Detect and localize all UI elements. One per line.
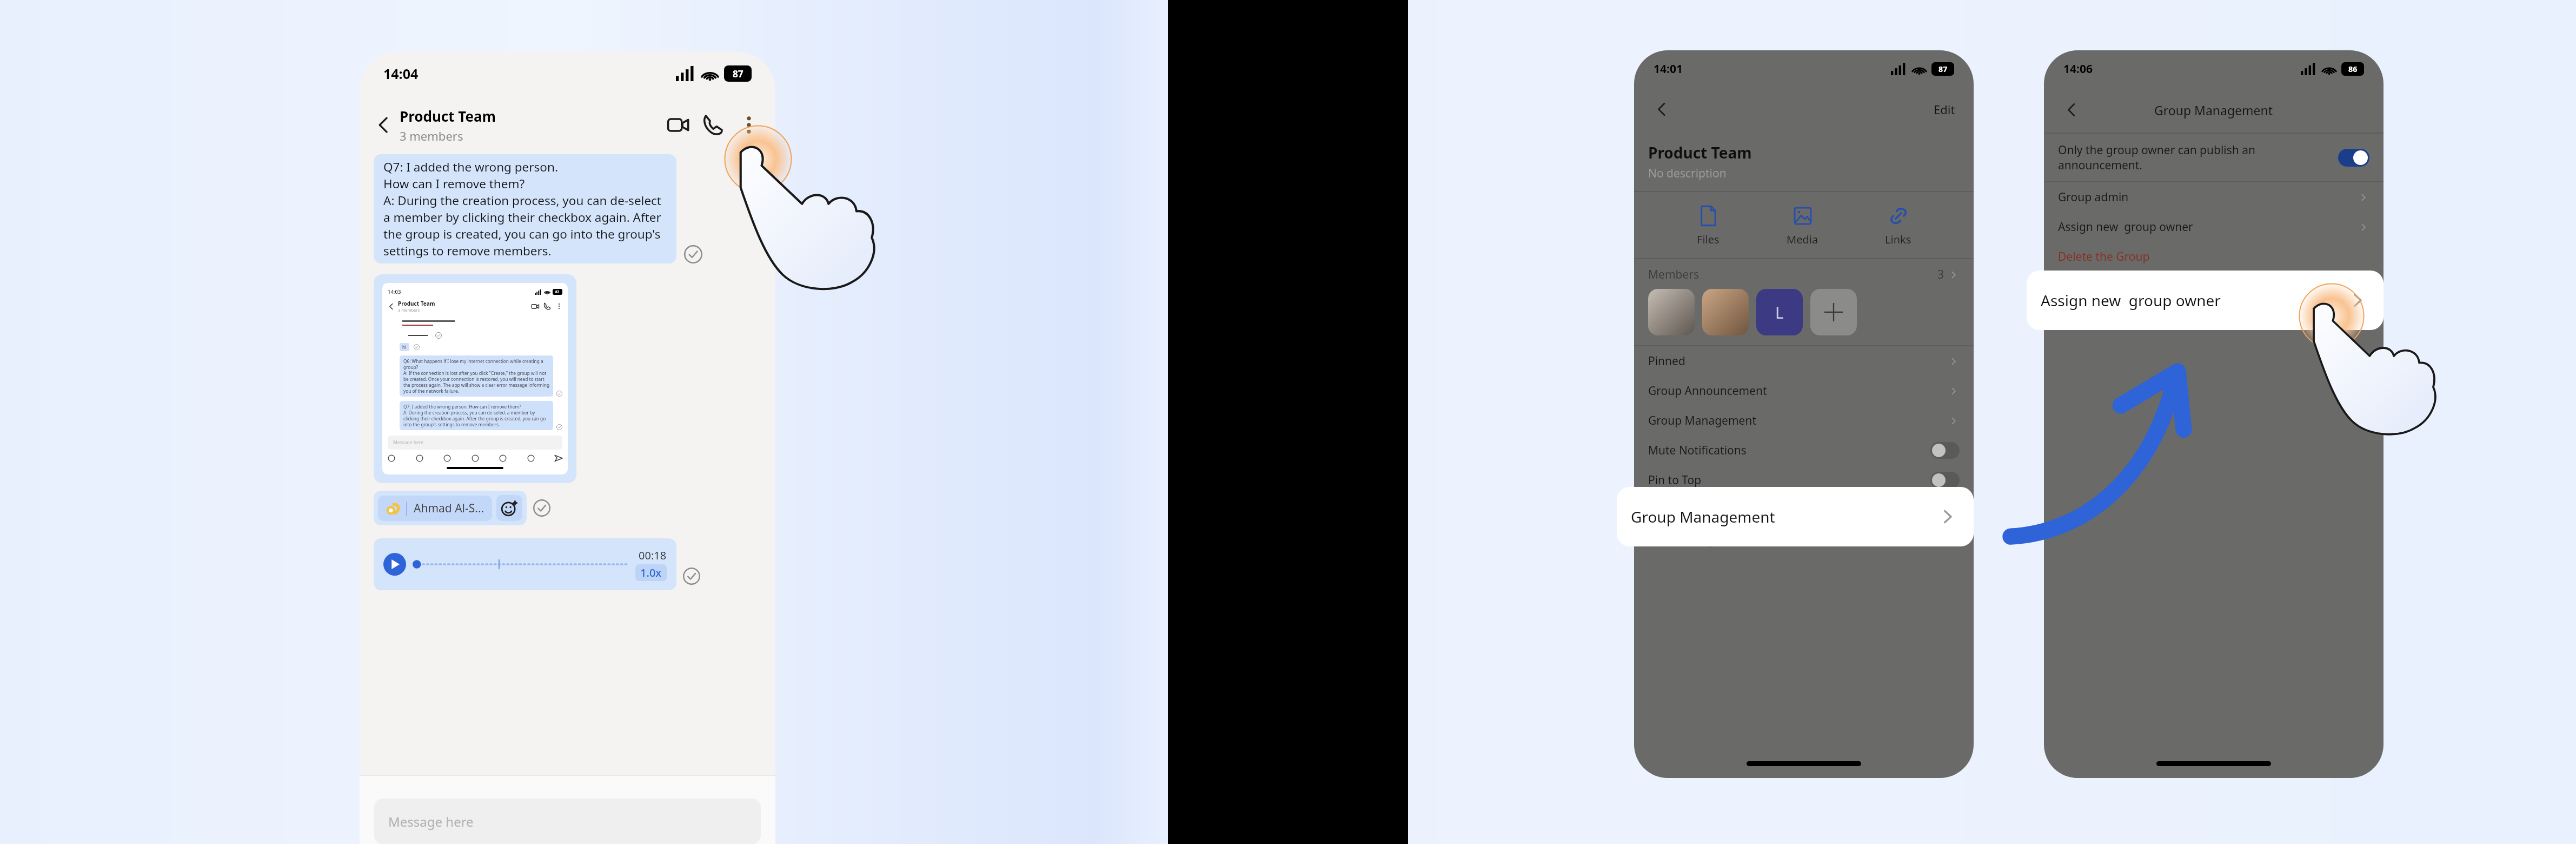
- staticText: 87: [1938, 64, 1948, 74]
- staticText: Mute Notifications: [1648, 443, 1930, 458]
- staticText: 3 members: [400, 128, 463, 144]
- button[interactable]: More options: [731, 107, 767, 143]
- button[interactable]: Media: [1782, 200, 1823, 251]
- button[interactable]: Mute Notifications: [1634, 436, 1974, 465]
- button[interactable]: Edit: [1929, 97, 1960, 122]
- staticText: 14:03: [388, 288, 401, 295]
- button[interactable]: Q7: I added the wrong person. How can I …: [374, 154, 676, 263]
- staticText: 3: [1937, 267, 1944, 282]
- button[interactable]: Leave Group: [1634, 526, 1974, 556]
- staticText: 86: [2348, 64, 2358, 74]
- button[interactable]: Back: [1648, 96, 1675, 123]
- staticText: Message here: [388, 813, 474, 830]
- button[interactable]: Ahmad Al-S...: [374, 491, 527, 525]
- staticText: Group Management: [2154, 102, 2273, 118]
- button[interactable]: Assign new group owner: [2044, 212, 2384, 242]
- staticText: Group Management: [1631, 506, 1936, 527]
- button[interactable]: Play: [374, 538, 676, 590]
- button[interactable]: Add reaction: [496, 495, 522, 521]
- staticText: Product Team: [400, 107, 496, 126]
- staticText: Group Management: [1648, 413, 1948, 428]
- button[interactable]: Play: [383, 553, 406, 576]
- button[interactable]: Video call: [660, 107, 695, 143]
- staticText: Q6: What happens if I lose my internet c…: [403, 358, 549, 394]
- staticText: Files: [1697, 232, 1719, 247]
- button[interactable]: Pinned: [1634, 346, 1974, 376]
- staticText: Only the group owner can publish an anno…: [2058, 142, 2331, 173]
- button[interactable]: 1.0x: [635, 564, 667, 581]
- staticText: L: [1775, 301, 1784, 324]
- staticText: Assign new group owner: [2041, 290, 2346, 311]
- staticText: Leave Group: [1648, 533, 1960, 549]
- button[interactable]: Delete the Group: [2044, 242, 2384, 272]
- staticText: Pinned: [1648, 353, 1948, 369]
- button[interactable]: Assign new group owner: [2027, 271, 2384, 330]
- button[interactable]: Group admin: [2044, 182, 2384, 212]
- button[interactable]: Voice call: [695, 107, 731, 143]
- button[interactable]: Message here: [374, 799, 761, 844]
- staticText: Q7: I added the wrong person. How can I …: [383, 159, 667, 259]
- staticText: 14:01: [1654, 61, 1683, 77]
- button[interactable]: Group Announcement: [1634, 376, 1974, 406]
- button[interactable]: Back: [2058, 96, 2085, 123]
- button[interactable]: Member: [1702, 289, 1749, 335]
- button[interactable]: Links: [1881, 200, 1916, 251]
- button[interactable]: Mute Notifications: [1930, 442, 1960, 459]
- staticText: Ahmad Al-S...: [414, 500, 484, 516]
- button[interactable]: Add member: [1810, 289, 1857, 335]
- staticText: 87: [733, 68, 743, 80]
- staticText: Pin to Top: [1648, 472, 1930, 488]
- staticText: Clear Chat History: [1648, 503, 1960, 519]
- button[interactable]: Back: [368, 110, 399, 140]
- staticText: Message here: [393, 439, 423, 446]
- button[interactable]: 14:03: [374, 274, 576, 483]
- button[interactable]: Pin to Top: [1930, 472, 1960, 489]
- staticText: No description: [1648, 166, 1727, 181]
- button[interactable]: Files: [1692, 200, 1724, 251]
- staticText: Links: [1885, 232, 1911, 247]
- staticText: 00:18: [639, 548, 667, 563]
- staticText: Q7: I added the wrong person. How can I …: [403, 404, 549, 427]
- staticText: Delete the Group: [2058, 249, 2369, 265]
- staticText: Members: [1648, 267, 1699, 282]
- staticText: Product Team: [398, 300, 435, 307]
- staticText: Edit: [1934, 101, 1955, 117]
- staticText: 3 members: [398, 307, 420, 313]
- staticText: Group admin: [2058, 189, 2358, 205]
- staticText: Media: [1787, 232, 1818, 247]
- button[interactable]: Group Management: [1634, 406, 1974, 436]
- button[interactable]: Toggle owner-only announcements: [2338, 149, 2369, 167]
- button[interactable]: L: [1756, 289, 1803, 335]
- staticText: 14:04: [383, 64, 419, 83]
- button[interactable]: Pin to Top: [1634, 465, 1974, 495]
- button[interactable]: Group Management: [1617, 487, 1974, 546]
- staticText: hi: [402, 344, 407, 350]
- staticText: 14:06: [2063, 61, 2093, 77]
- staticText: Assign new group owner: [2058, 219, 2358, 235]
- staticText: 1.0x: [640, 565, 662, 580]
- button[interactable]: Member: [1648, 289, 1695, 335]
- staticText: 87: [555, 289, 560, 294]
- staticText: Product Team: [1648, 142, 1752, 163]
- staticText: Group Announcement: [1648, 383, 1948, 399]
- button[interactable]: Clear Chat History: [1634, 496, 1974, 526]
